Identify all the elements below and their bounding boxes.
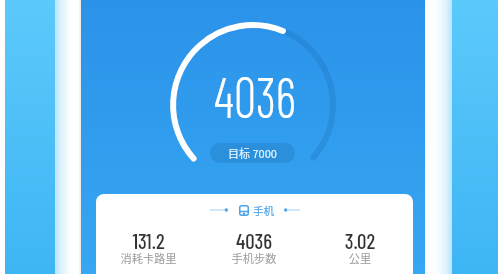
staticText: 手机步数 <box>201 250 307 266</box>
button[interactable]: 目标 7000 <box>210 143 295 163</box>
staticText: 消耗卡路里 <box>96 250 201 266</box>
staticText: 目标 7000 <box>228 145 277 161</box>
button[interactable]: 4036 <box>201 228 307 268</box>
staticText: 4036 <box>201 228 307 253</box>
staticText: 3.02 <box>307 228 413 253</box>
staticText: 4036 <box>105 61 405 129</box>
other: Phone <box>239 205 249 216</box>
staticText: 手机 <box>253 203 275 217</box>
staticText: 公里 <box>307 250 413 266</box>
button[interactable]: 3.02 <box>307 228 413 268</box>
staticText: 131.2 <box>96 228 201 253</box>
button[interactable]: 131.2 <box>96 228 201 268</box>
